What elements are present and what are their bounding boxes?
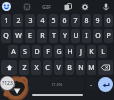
staticText: E xyxy=(28,31,32,41)
button[interactable]: 2 xyxy=(13,14,23,27)
staticText: Z xyxy=(22,63,27,73)
staticText: O xyxy=(95,31,101,41)
staticText: F xyxy=(46,47,50,57)
button[interactable]: F xyxy=(43,45,52,58)
button[interactable]: U xyxy=(71,29,80,43)
button[interactable]: T xyxy=(49,29,58,43)
button[interactable]: . xyxy=(86,77,95,91)
button[interactable]: A xyxy=(8,45,18,58)
staticText: , xyxy=(22,80,24,88)
staticText: 7 xyxy=(73,16,78,26)
button[interactable]: 7 xyxy=(71,14,80,27)
button[interactable]: Emoji xyxy=(0,0,13,13)
staticText: 3 xyxy=(28,16,33,26)
button[interactable]: E xyxy=(25,29,35,43)
button[interactable]: Settings xyxy=(78,0,91,13)
staticText: B xyxy=(67,63,72,73)
button[interactable]: GIF xyxy=(40,0,53,13)
button[interactable]: 9 xyxy=(93,14,102,27)
button[interactable]: R xyxy=(37,29,47,43)
button[interactable]: 4 xyxy=(37,14,47,27)
staticText: T xyxy=(52,31,56,41)
staticText: GIF xyxy=(42,3,52,10)
button[interactable]: O xyxy=(93,29,102,43)
button[interactable]: 0 xyxy=(104,14,113,27)
button[interactable]: Backspace xyxy=(98,60,113,75)
button[interactable]: 6 xyxy=(60,14,69,27)
staticText: R xyxy=(40,31,45,41)
button[interactable]: 1 xyxy=(1,14,11,27)
button[interactable]: 5 xyxy=(49,14,58,27)
button[interactable]: D xyxy=(32,45,41,58)
staticText: J xyxy=(80,47,82,57)
button[interactable]: Voice input xyxy=(99,0,112,13)
button[interactable]: N xyxy=(76,60,85,75)
staticText: S xyxy=(23,47,27,57)
staticText: ?123 xyxy=(3,81,15,88)
staticText: IT-EN xyxy=(52,82,62,87)
staticText: I xyxy=(85,31,88,41)
staticText: G xyxy=(56,47,62,57)
button[interactable]: P xyxy=(104,29,113,43)
button[interactable]: W xyxy=(13,29,23,43)
button[interactable]: X xyxy=(31,60,41,75)
staticText: X xyxy=(34,63,39,73)
staticText: C xyxy=(45,63,50,73)
button[interactable]: ?123 xyxy=(1,77,16,91)
staticText: N xyxy=(78,63,84,73)
staticText: L xyxy=(101,47,105,57)
button[interactable]: H xyxy=(65,45,74,58)
button[interactable]: S xyxy=(20,45,30,58)
button[interactable]: I xyxy=(82,29,91,43)
staticText: H xyxy=(67,47,73,57)
button[interactable]: Clipboard xyxy=(61,0,74,13)
button[interactable]: B xyxy=(65,60,74,75)
staticText: D xyxy=(34,47,40,57)
button[interactable]: C xyxy=(43,60,52,75)
button[interactable]: IT-EN xyxy=(29,77,84,91)
staticText: 0 xyxy=(106,16,111,26)
staticText: V xyxy=(56,63,61,73)
staticText: Y xyxy=(63,31,67,41)
button[interactable]: G xyxy=(54,45,63,58)
staticText: 9 xyxy=(95,16,100,26)
staticText: 6 xyxy=(62,16,67,26)
staticText: K xyxy=(89,47,94,57)
button[interactable]: 3 xyxy=(25,14,35,27)
button[interactable]: Stickers xyxy=(20,0,33,13)
button[interactable]: Q xyxy=(1,29,11,43)
staticText: W xyxy=(15,31,22,41)
staticText: 1 xyxy=(4,16,9,26)
button[interactable]: 8 xyxy=(82,14,91,27)
staticText: M xyxy=(88,63,95,73)
button[interactable]: Enter xyxy=(98,77,113,92)
staticText: A xyxy=(11,47,16,57)
button[interactable]: Z xyxy=(19,60,29,75)
button[interactable]: V xyxy=(54,60,63,75)
button[interactable]: M xyxy=(87,60,96,75)
button[interactable]: L xyxy=(98,45,107,58)
staticText: U xyxy=(73,31,79,41)
staticText: 2 xyxy=(16,16,21,26)
button[interactable]: K xyxy=(87,45,96,58)
staticText: 4 xyxy=(40,16,45,26)
staticText: 8 xyxy=(84,16,89,26)
staticText: ?123 xyxy=(2,80,13,87)
staticText: 5 xyxy=(51,16,56,26)
button[interactable]: Y xyxy=(60,29,69,43)
button[interactable]: Shift xyxy=(1,60,17,75)
button[interactable]: J xyxy=(76,45,85,58)
staticText: Q xyxy=(3,31,9,41)
staticText: . xyxy=(90,80,92,88)
staticText: P xyxy=(106,31,111,41)
button[interactable]: , xyxy=(18,77,27,91)
